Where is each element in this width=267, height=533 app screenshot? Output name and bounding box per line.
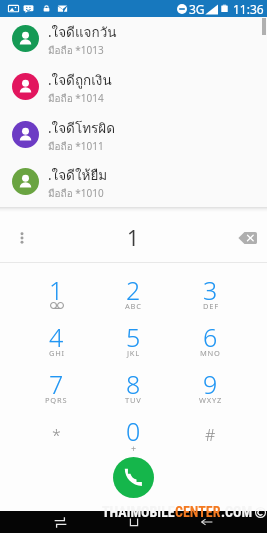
staticText: 2 bbox=[126, 273, 141, 307]
staticText: WXYZ bbox=[199, 395, 223, 405]
button[interactable]: 6 bbox=[172, 319, 249, 366]
staticText: 1 bbox=[127, 224, 140, 253]
staticText: 5 bbox=[126, 320, 141, 354]
button[interactable]: 0 bbox=[95, 413, 172, 460]
button[interactable]: * bbox=[18, 413, 95, 460]
staticText: .ใจดีถูกเงิน bbox=[48, 69, 112, 90]
staticText: 7 bbox=[49, 367, 64, 401]
button[interactable]: 4 bbox=[18, 319, 95, 366]
staticText: .ใจดีแจกวัน bbox=[48, 21, 117, 42]
staticText: 4 bbox=[49, 320, 64, 354]
staticText: 0 bbox=[126, 414, 141, 448]
button[interactable]: 5 bbox=[95, 319, 172, 366]
staticText: THAIMOBILE bbox=[102, 504, 175, 520]
staticText: 1 bbox=[49, 273, 64, 307]
button[interactable]: 7 bbox=[18, 366, 95, 413]
button[interactable]: Backspace bbox=[232, 223, 262, 253]
staticText: .ใจดีโทรผิด bbox=[48, 117, 115, 138]
button[interactable]: .ใจดีโทรผิด bbox=[0, 110, 267, 158]
staticText: 3 bbox=[203, 273, 218, 307]
staticText: มือถือ *1010 bbox=[48, 186, 104, 202]
staticText: .ใจดีให้ยืม bbox=[48, 164, 108, 185]
staticText: + bbox=[131, 442, 137, 454]
button[interactable]: 8 bbox=[95, 366, 172, 413]
staticText: 8 bbox=[126, 367, 141, 401]
staticText: 3G bbox=[189, 1, 205, 17]
staticText: GHI bbox=[49, 348, 65, 358]
staticText: CENTER bbox=[175, 504, 221, 520]
button[interactable]: 2 bbox=[95, 272, 172, 319]
button[interactable]: Recents bbox=[47, 511, 73, 533]
button[interactable]: 3 bbox=[172, 272, 249, 319]
button[interactable]: .ใจดีแจกวัน bbox=[0, 14, 267, 62]
staticText: .COM bbox=[221, 504, 253, 520]
button[interactable]: More options bbox=[9, 225, 35, 251]
button[interactable]: Home bbox=[121, 511, 147, 533]
staticText: # bbox=[205, 424, 216, 446]
staticText: มือถือ *1011 bbox=[48, 139, 104, 155]
staticText: มือถือ *1013 bbox=[48, 43, 104, 59]
button[interactable]: # bbox=[172, 413, 249, 460]
staticText: * bbox=[52, 424, 61, 446]
staticText: 11:36 bbox=[233, 1, 264, 17]
staticText: MNO bbox=[200, 348, 221, 358]
staticText: มือถือ *1014 bbox=[48, 91, 104, 107]
staticText: 9 bbox=[203, 367, 218, 401]
button[interactable]: Back bbox=[194, 511, 220, 533]
staticText: DEF bbox=[203, 301, 219, 311]
button[interactable]: 9 bbox=[172, 366, 249, 413]
button[interactable]: .ใจดีถูกเงิน bbox=[0, 62, 267, 110]
button[interactable]: Call bbox=[113, 457, 154, 498]
staticText: JKL bbox=[127, 348, 141, 358]
staticText: TUV bbox=[125, 395, 142, 405]
staticText: PQRS bbox=[45, 395, 68, 405]
button[interactable]: .ใจดีให้ยืม bbox=[0, 158, 267, 204]
button[interactable]: 1 bbox=[18, 272, 95, 319]
staticText: ABC bbox=[125, 301, 142, 311]
staticText: 6 bbox=[203, 320, 218, 354]
